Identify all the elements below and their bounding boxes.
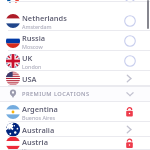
- staticText: London: [22, 63, 42, 70]
- staticText: Netherlands: [22, 13, 67, 23]
- other: Scroll position: [147, 0, 149, 29]
- button[interactable]: Austria: [0, 137, 150, 150]
- staticText: PREMIUM LOCATIONS: [22, 90, 90, 98]
- button[interactable]: UK: [0, 51, 150, 71]
- staticText: Argentina: [22, 104, 58, 114]
- staticText: Amsterdam: [22, 23, 52, 30]
- staticText: Austria: [22, 137, 48, 147]
- staticText: USA: [22, 74, 37, 84]
- staticText: Moscow: [22, 43, 43, 50]
- staticText: Vienna: [22, 147, 40, 150]
- button[interactable]: Argentina: [0, 102, 150, 122]
- button[interactable]: Russia: [0, 31, 150, 51]
- button[interactable]: USA: [0, 71, 150, 86]
- button[interactable]: PREMIUM LOCATIONS: [0, 86, 150, 102]
- button[interactable]: France: [0, 0, 150, 2]
- staticText: Russia: [22, 33, 46, 43]
- button[interactable]: Australia: [0, 122, 150, 137]
- button[interactable]: Netherlands: [0, 11, 150, 31]
- staticText: Australia: [22, 125, 55, 135]
- staticText: Buenos Aires: [22, 114, 56, 121]
- staticText: UK: [22, 53, 33, 63]
